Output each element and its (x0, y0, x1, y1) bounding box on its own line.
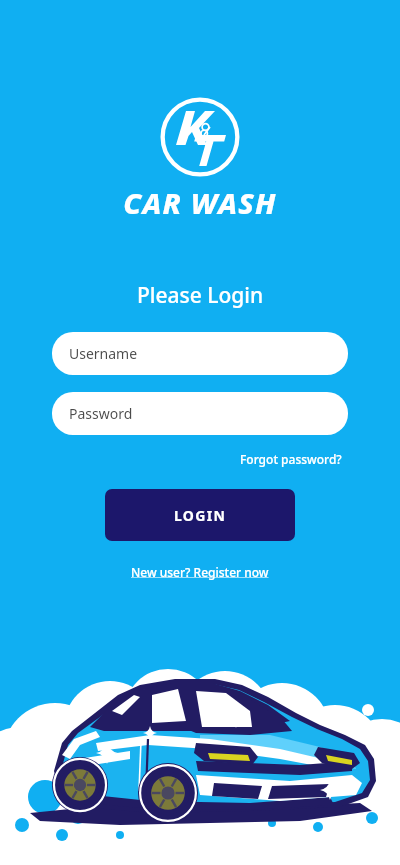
staticText: LOGIN (174, 506, 227, 525)
staticText: New user? Register now (131, 564, 269, 580)
button[interactable]: Forgot password? (236, 448, 346, 470)
staticText: CAR WASH (0, 183, 400, 222)
button[interactable]: New user? Register now (127, 562, 273, 582)
staticText: Username (69, 344, 138, 363)
staticText: Please Login (0, 281, 400, 310)
button[interactable]: Password (52, 392, 348, 435)
staticText: Forgot password? (240, 451, 342, 467)
button[interactable]: LOGIN (105, 489, 295, 541)
staticText: Password (69, 404, 133, 423)
button[interactable]: Username (52, 332, 348, 375)
